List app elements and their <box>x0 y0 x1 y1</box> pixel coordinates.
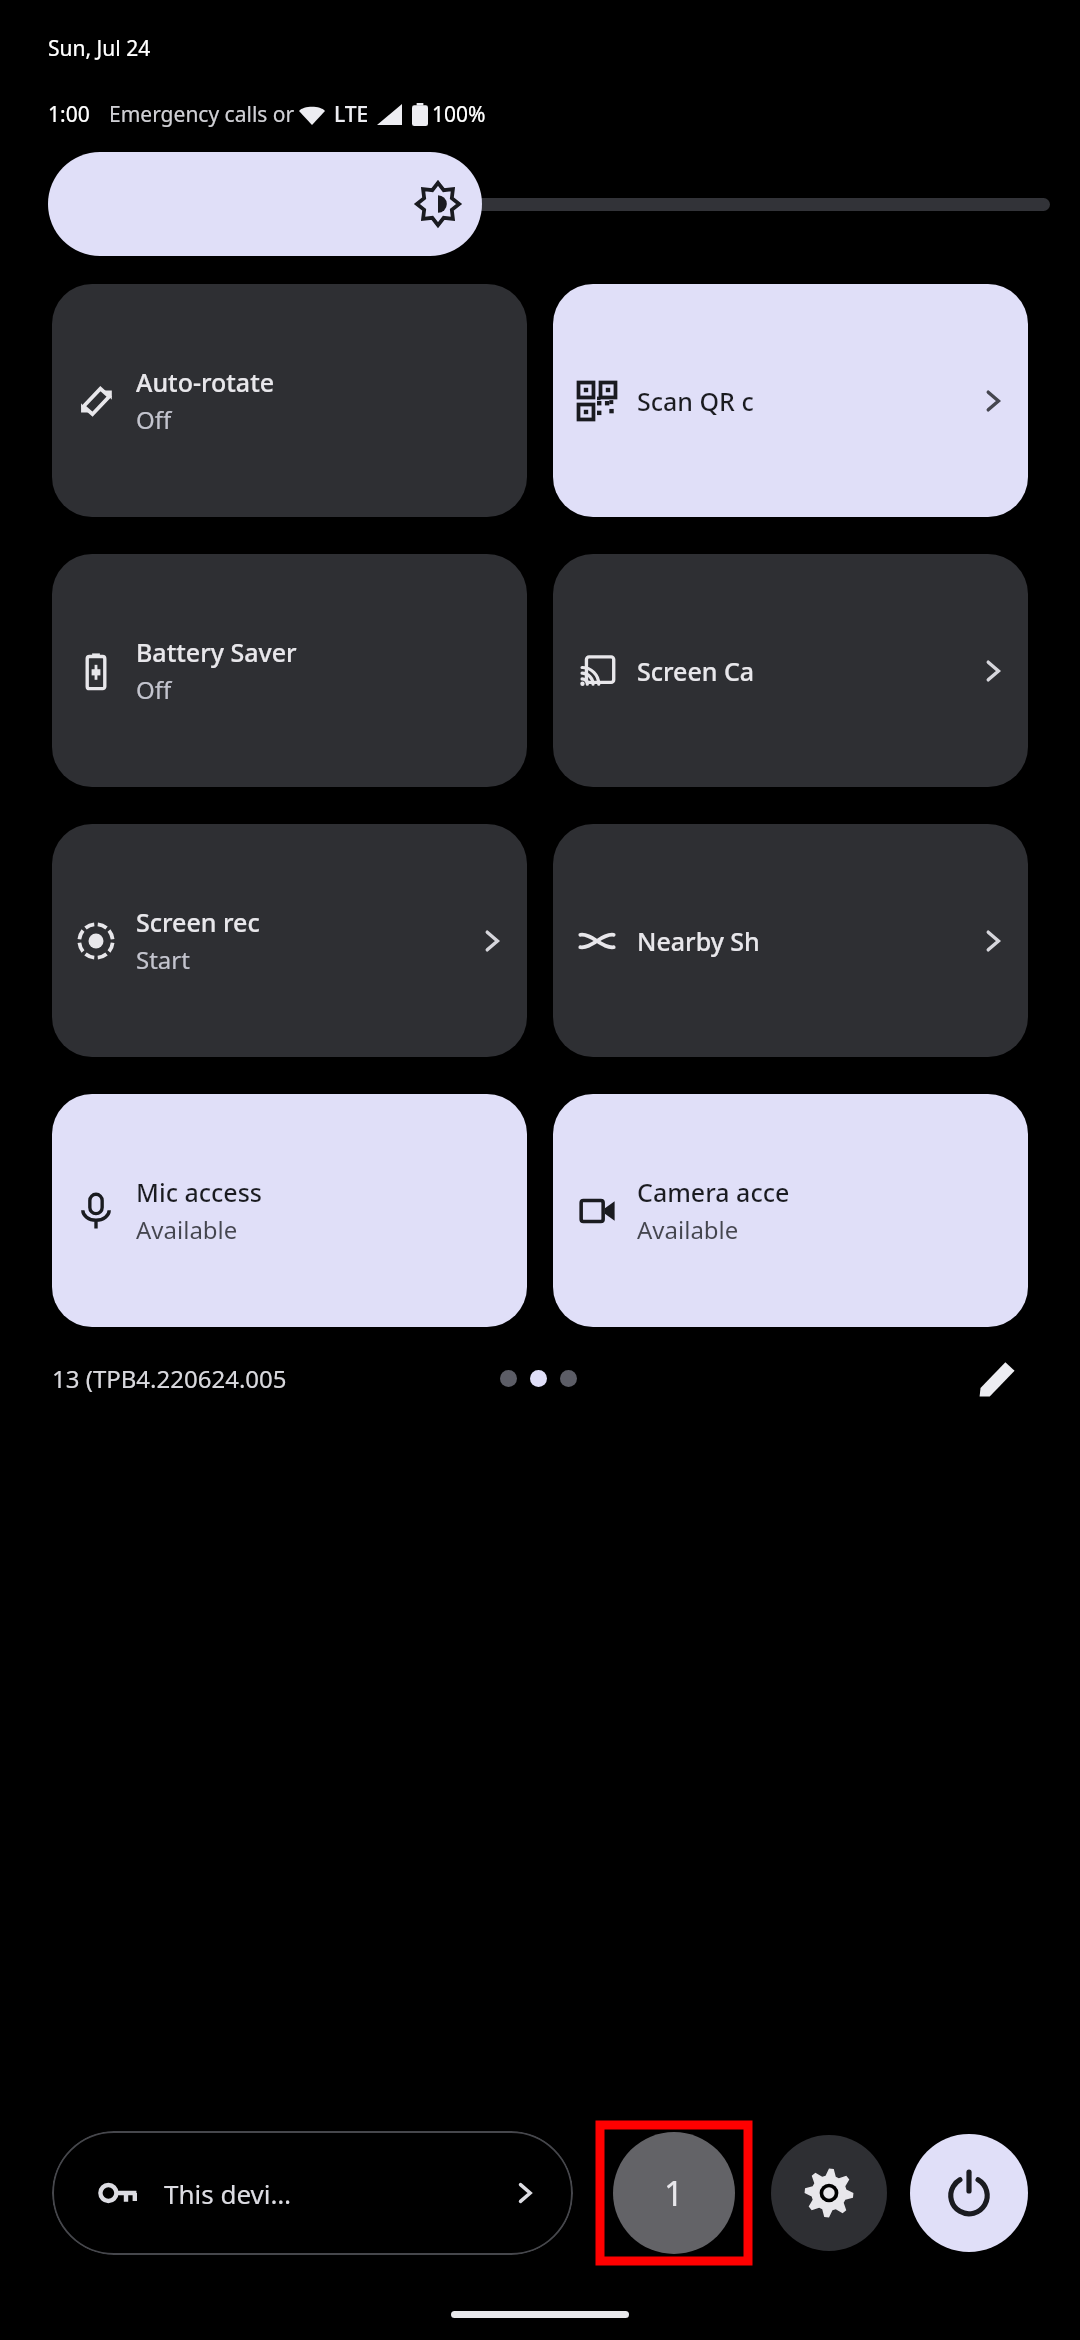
button[interactable]: Screen Ca <box>553 554 1028 787</box>
staticText: 1:00 <box>48 100 90 129</box>
staticText: Battery Saver <box>136 635 297 669</box>
staticText: Available <box>637 1213 739 1246</box>
staticText: Screen rec <box>136 905 260 939</box>
staticText: 1 <box>664 2170 684 2216</box>
button[interactable]: Nearby Sh <box>553 824 1028 1057</box>
staticText: Nearby Sh <box>637 924 760 958</box>
staticText: Available <box>136 1213 238 1246</box>
button[interactable]: Scan QR c <box>553 284 1028 517</box>
staticText: 13 (TPB4.220624.005 <box>52 1362 287 1395</box>
button[interactable]: Battery Saver <box>52 554 527 787</box>
staticText: Auto-rotate <box>136 365 275 399</box>
staticText: Off <box>136 673 172 706</box>
button[interactable]: Edit tiles <box>968 1348 1028 1408</box>
button[interactable]: Mic access <box>52 1094 527 1327</box>
staticText: Screen Ca <box>637 654 755 688</box>
button[interactable]: Camera acce <box>553 1094 1028 1327</box>
button[interactable]: Screen rec <box>52 824 527 1057</box>
staticText: Sun, Jul 24 <box>48 34 151 63</box>
staticText: Camera acce <box>637 1175 790 1209</box>
staticText: Off <box>136 403 172 436</box>
button[interactable]: Power <box>910 2134 1028 2252</box>
staticText: Emergency calls or <box>109 100 295 129</box>
staticText: LTE <box>334 100 369 129</box>
button[interactable]: Settings <box>771 2135 887 2251</box>
button[interactable]: Auto-rotate <box>52 284 527 517</box>
button[interactable]: User 1 <box>600 2125 748 2261</box>
button[interactable]: This devi… <box>52 2131 573 2255</box>
staticText: Scan QR c <box>637 384 754 418</box>
staticText: This devi… <box>164 2176 292 2211</box>
staticText: Mic access <box>136 1175 262 1209</box>
staticText: 100% <box>432 100 486 129</box>
button[interactable]: Brightness <box>48 152 482 256</box>
staticText: Start <box>136 943 190 976</box>
